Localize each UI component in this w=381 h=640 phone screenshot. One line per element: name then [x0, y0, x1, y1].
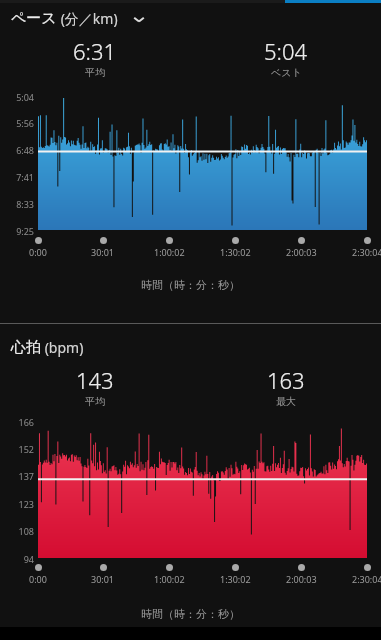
staticText: 1:30:02: [220, 246, 251, 258]
staticText: 1:00:02: [154, 246, 185, 258]
staticText: 30:01: [91, 246, 115, 258]
staticText: 2:00:03: [286, 573, 317, 585]
staticText: 5:56: [1, 117, 34, 129]
staticText: 最大: [276, 395, 296, 408]
staticText: ベスト: [271, 66, 302, 79]
staticText: 2:00:03: [286, 246, 317, 258]
staticText: 時間（時：分：秒）: [141, 278, 240, 292]
staticText: (分／km): [57, 9, 118, 28]
staticText: 123: [1, 498, 34, 510]
staticText: 平均: [85, 395, 105, 408]
staticText: (bpm): [41, 338, 84, 357]
button[interactable]: 心拍: [0, 336, 381, 359]
staticText: 163: [267, 365, 305, 395]
button[interactable]: ペース: [0, 7, 381, 30]
staticText: 6:48: [1, 144, 34, 156]
staticText: 1:00:02: [154, 573, 185, 585]
staticText: 5:04: [264, 36, 308, 66]
staticText: 9:25: [1, 225, 34, 237]
staticText: 7:41: [1, 171, 34, 183]
staticText: 時間（時：分：秒）: [141, 607, 240, 621]
staticText: 143: [76, 365, 114, 395]
staticText: 152: [1, 443, 34, 455]
staticText: 2:30:04: [352, 246, 381, 258]
staticText: 137: [1, 470, 34, 482]
staticText: 1:30:02: [220, 573, 251, 585]
staticText: 0:00: [29, 573, 47, 585]
staticText: 166: [1, 416, 34, 428]
other: Change metric: [131, 11, 147, 27]
staticText: 6:31: [73, 36, 117, 66]
staticText: ペース: [11, 9, 57, 28]
staticText: 2:30:04: [352, 573, 381, 585]
staticText: 0:00: [29, 246, 47, 258]
staticText: 94: [1, 553, 34, 565]
staticText: 108: [1, 525, 34, 537]
staticText: 8:33: [1, 198, 34, 210]
staticText: 平均: [85, 66, 105, 79]
staticText: 5:04: [1, 91, 34, 103]
staticText: 心拍: [11, 338, 41, 357]
staticText: 30:01: [91, 573, 115, 585]
